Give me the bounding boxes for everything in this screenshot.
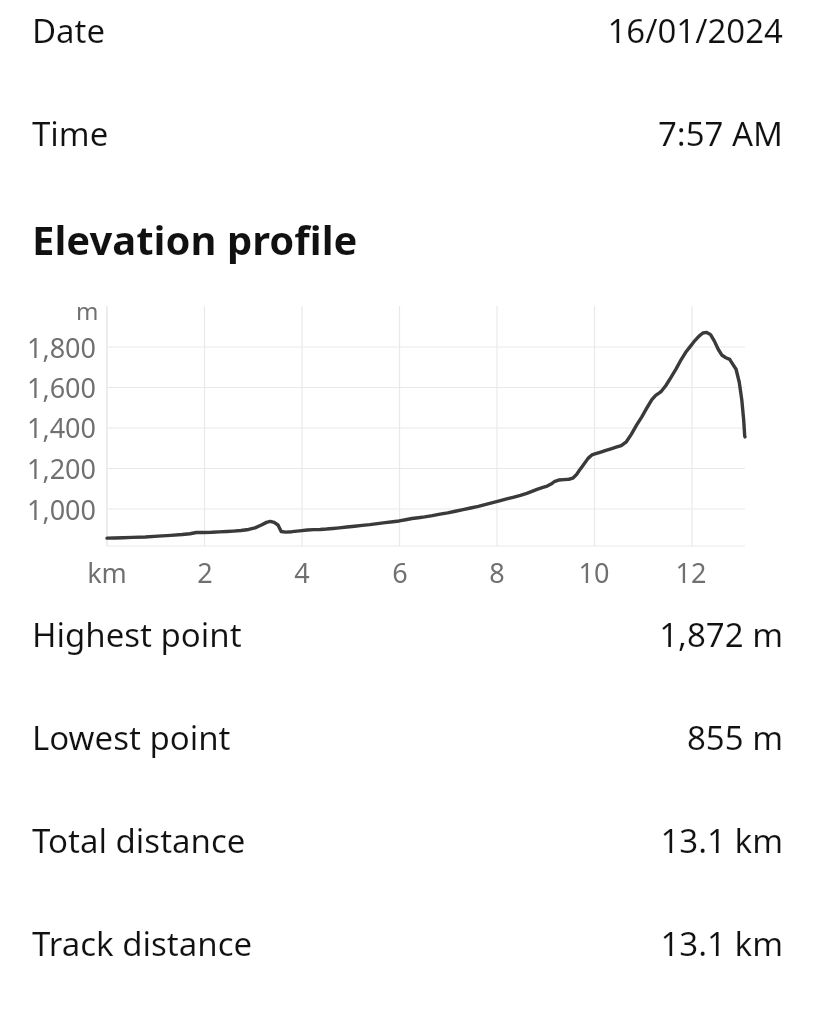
staticText: 1,400 (0, 409, 96, 446)
staticText: 1,600 (0, 369, 96, 406)
staticText: 1,200 (0, 450, 96, 487)
button[interactable]: Total distance (0, 760, 813, 863)
button[interactable]: Time (0, 53, 813, 156)
staticText: 855 m (686, 715, 783, 760)
staticText: 4 (262, 554, 342, 591)
staticText: 1,000 (0, 491, 96, 528)
staticText: 1,872 m (659, 612, 783, 657)
staticText: 12 (651, 554, 731, 591)
staticText: Highest point (32, 612, 242, 657)
staticText: 7:57 AM (657, 111, 783, 156)
button[interactable]: Track distance (0, 863, 813, 966)
staticText: Time (32, 111, 109, 156)
staticText: 13.1 km (660, 921, 783, 966)
staticText: Track distance (32, 921, 253, 966)
staticText: 10 (554, 554, 634, 591)
staticText: 16/01/2024 (607, 8, 783, 53)
button[interactable]: Date (0, 0, 813, 53)
staticText: km (67, 554, 147, 591)
button[interactable]: Highest point (0, 612, 813, 657)
staticText: 1,800 (0, 329, 96, 366)
staticText: m (76, 294, 99, 327)
staticText: Date (32, 8, 106, 53)
staticText: Total distance (32, 818, 246, 863)
staticText: 6 (360, 554, 440, 591)
button[interactable]: Lowest point (0, 657, 813, 760)
staticText: 13.1 km (660, 818, 783, 863)
staticText: 2 (165, 554, 245, 591)
staticText: Lowest point (32, 715, 231, 760)
staticText: 8 (457, 554, 537, 591)
staticText: Elevation profile (32, 212, 358, 266)
